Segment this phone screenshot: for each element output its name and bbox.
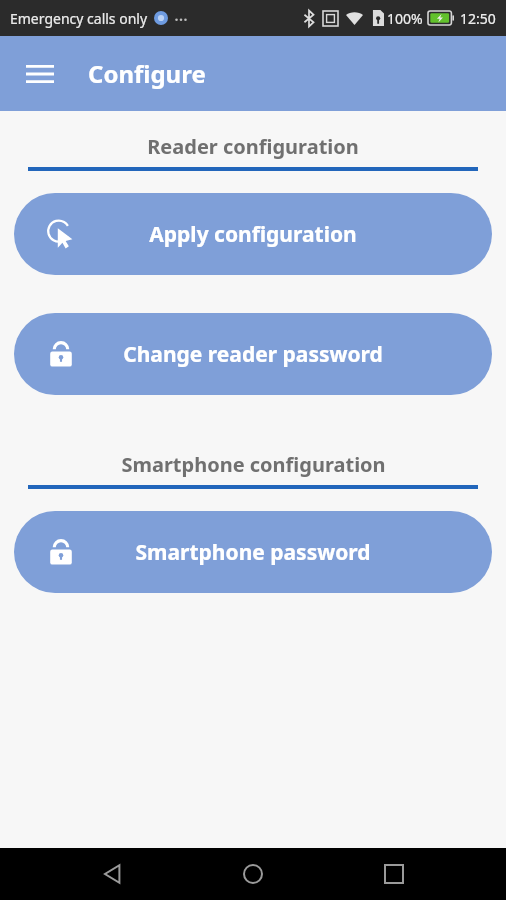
button[interactable]: Home [225, 848, 281, 900]
staticText: Change reader password [123, 340, 383, 369]
staticText: Smartphone password [135, 538, 371, 567]
button[interactable]: Change reader password [14, 313, 492, 395]
staticText: Smartphone configuration [121, 451, 386, 478]
button[interactable]: Smartphone password [14, 511, 492, 593]
staticText: 100% [387, 9, 423, 28]
button[interactable]: Apply configuration [14, 193, 492, 275]
button[interactable]: Open navigation menu [14, 48, 66, 100]
staticText: Emergency calls only [10, 9, 148, 28]
staticText: Apply configuration [149, 220, 357, 249]
staticText: Reader configuration [147, 133, 359, 160]
button[interactable]: Recent apps [366, 848, 422, 900]
button[interactable]: Back [85, 848, 141, 900]
staticText: Configure [88, 57, 206, 90]
staticText: 12:50 [460, 9, 496, 28]
